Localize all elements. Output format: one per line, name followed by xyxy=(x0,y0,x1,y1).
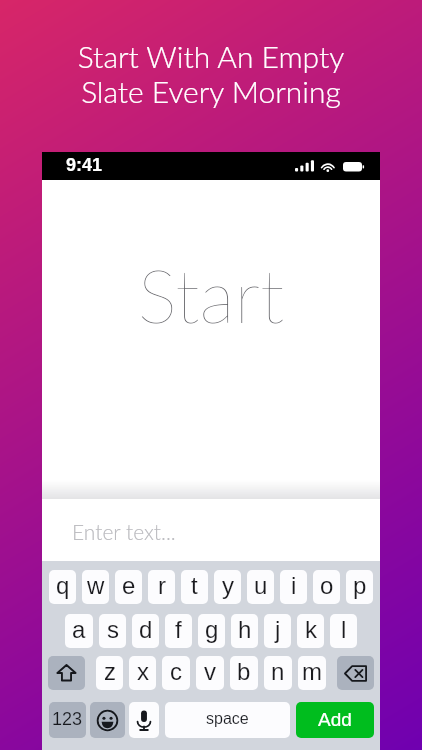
button[interactable]: k xyxy=(297,614,324,648)
button[interactable]: Dictate xyxy=(129,702,159,738)
staticText: Start With An Empty Slate Every Morning xyxy=(0,38,422,110)
staticText: 9:41 xyxy=(66,155,103,175)
other: Status icons xyxy=(295,160,364,173)
button[interactable]: u xyxy=(247,570,274,604)
button[interactable]: q xyxy=(49,570,76,604)
staticText: m xyxy=(302,658,322,685)
button[interactable]: s xyxy=(99,614,126,648)
button[interactable]: d xyxy=(132,614,159,648)
button[interactable]: c xyxy=(162,656,190,690)
button[interactable]: g xyxy=(198,614,225,648)
button[interactable]: t xyxy=(181,570,208,604)
staticText: Add xyxy=(318,709,352,730)
staticText: r xyxy=(158,572,166,599)
button[interactable]: o xyxy=(313,570,340,604)
staticText: w xyxy=(87,572,105,599)
staticText: t xyxy=(191,572,198,599)
button[interactable]: Emoji xyxy=(90,702,125,738)
staticText: n xyxy=(271,658,285,685)
staticText: 123 xyxy=(52,709,83,729)
button[interactable]: z xyxy=(96,656,123,690)
button[interactable]: space xyxy=(165,702,290,738)
button[interactable]: 123 xyxy=(49,702,86,738)
staticText: Start xyxy=(42,250,380,339)
staticText: x xyxy=(137,658,149,685)
staticText: a xyxy=(72,616,86,643)
button[interactable]: l xyxy=(330,614,357,648)
staticText: v xyxy=(204,658,216,685)
staticText: o xyxy=(320,572,334,599)
staticText: u xyxy=(254,572,268,599)
button[interactable]: Shift xyxy=(48,656,85,690)
button[interactable]: f xyxy=(165,614,192,648)
button[interactable]: a xyxy=(65,614,93,648)
button[interactable]: Add xyxy=(296,702,374,738)
staticText: e xyxy=(122,572,136,599)
button[interactable]: m xyxy=(298,656,326,690)
staticText: k xyxy=(305,616,317,643)
button[interactable]: y xyxy=(214,570,241,604)
staticText: f xyxy=(175,616,182,643)
button[interactable]: i xyxy=(280,570,307,604)
button[interactable]: h xyxy=(231,614,258,648)
button[interactable]: b xyxy=(230,656,258,690)
button[interactable]: x xyxy=(129,656,156,690)
button[interactable]: n xyxy=(264,656,292,690)
staticText: Enter text... xyxy=(72,519,176,544)
button[interactable]: p xyxy=(346,570,373,604)
staticText: s xyxy=(107,616,119,643)
staticText: i xyxy=(291,572,297,599)
staticText: l xyxy=(341,616,347,643)
staticText: q xyxy=(56,572,70,599)
staticText: z xyxy=(104,658,116,685)
staticText: p xyxy=(353,572,367,599)
staticText: g xyxy=(205,616,219,643)
button[interactable]: e xyxy=(115,570,142,604)
staticText: h xyxy=(238,616,252,643)
staticText: c xyxy=(170,658,182,685)
staticText: y xyxy=(222,572,234,599)
button[interactable]: w xyxy=(82,570,109,604)
button[interactable]: r xyxy=(148,570,175,604)
staticText: b xyxy=(237,658,251,685)
staticText: j xyxy=(275,616,281,643)
button[interactable]: Backspace xyxy=(337,656,374,690)
button[interactable]: j xyxy=(264,614,291,648)
button[interactable]: v xyxy=(196,656,224,690)
staticText: space xyxy=(206,710,249,728)
staticText: d xyxy=(139,616,153,643)
